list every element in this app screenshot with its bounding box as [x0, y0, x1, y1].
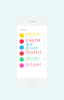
- button[interactable]: Olivia Reed: [17, 50, 47, 56]
- staticText: Thanks for today: [26, 48, 38, 50]
- staticText: Sophia Lane: [26, 63, 42, 66]
- staticText: Amelia Hart: [26, 33, 41, 36]
- staticText: Noah Bennett: [26, 43, 38, 50]
- button[interactable]: Liam Carter: [17, 56, 47, 62]
- staticText: Olivia Reed: [26, 51, 42, 54]
- staticText: Jessica Park: [26, 39, 40, 42]
- staticText: Sent you the files: [26, 36, 37, 38]
- staticText: Sounds good to me: [26, 60, 39, 62]
- staticText: Just landed, call me: [26, 66, 37, 68]
- button[interactable]: Jessica Park: [17, 38, 47, 44]
- staticText: Liam Carter: [26, 57, 40, 60]
- staticText: Can we reschedule: [26, 54, 40, 56]
- button[interactable]: Sophia Lane: [17, 62, 47, 68]
- button[interactable]: Amelia Hart: [17, 32, 47, 38]
- button[interactable]: Noah Bennett: [17, 44, 47, 50]
- staticText: See you at seven: [26, 42, 38, 44]
